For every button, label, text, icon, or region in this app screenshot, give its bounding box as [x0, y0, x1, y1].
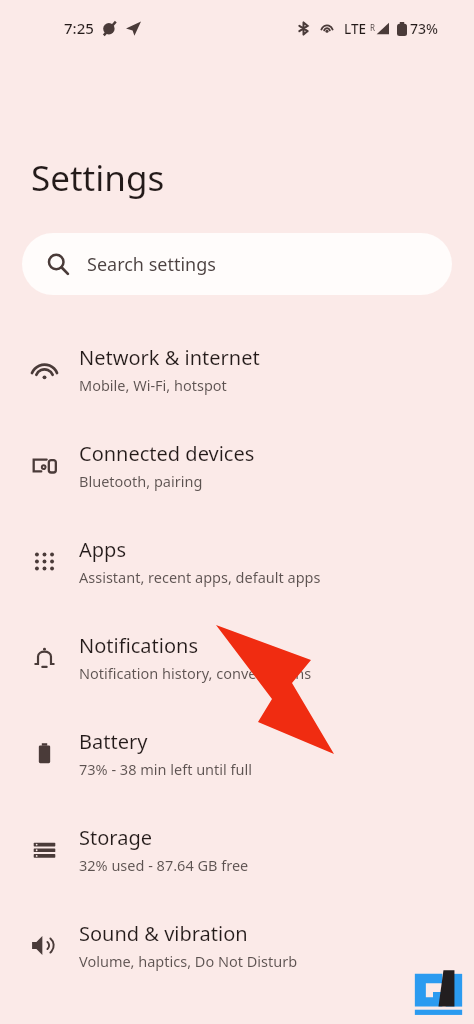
staticText: Settings: [31, 154, 165, 202]
staticText: Bluetooth, pairing: [79, 471, 203, 491]
staticText: Notification history, conversations: [79, 663, 312, 683]
staticText: R: [370, 22, 375, 33]
staticText: 32% used - 87.64 GB free: [79, 855, 249, 875]
staticText: Network & internet: [79, 344, 260, 371]
staticText: Apps: [79, 536, 126, 563]
staticText: Sound & vibration: [79, 920, 248, 947]
button[interactable]: Notifications: [0, 609, 474, 705]
staticText: 73%: [410, 19, 438, 38]
staticText: Mobile, Wi-Fi, hotspot: [79, 375, 227, 395]
button[interactable]: Search settings: [22, 233, 452, 295]
staticText: Connected devices: [79, 440, 255, 467]
button[interactable]: Sound & vibration: [0, 897, 474, 993]
button[interactable]: Storage: [0, 801, 474, 897]
staticText: Battery: [79, 728, 148, 755]
staticText: 73% - 38 min left until full: [79, 759, 252, 779]
staticText: Volume, haptics, Do Not Disturb: [79, 951, 298, 971]
staticText: Notifications: [79, 632, 198, 659]
staticText: LTE: [344, 20, 367, 38]
button[interactable]: Network & internet: [0, 321, 474, 417]
button[interactable]: Apps: [0, 513, 474, 609]
button[interactable]: Connected devices: [0, 417, 474, 513]
staticText: Storage: [79, 824, 152, 851]
staticText: Assistant, recent apps, default apps: [79, 567, 321, 587]
staticText: Search settings: [87, 252, 216, 277]
button[interactable]: Battery: [0, 705, 474, 801]
staticText: 7:25: [64, 18, 94, 38]
